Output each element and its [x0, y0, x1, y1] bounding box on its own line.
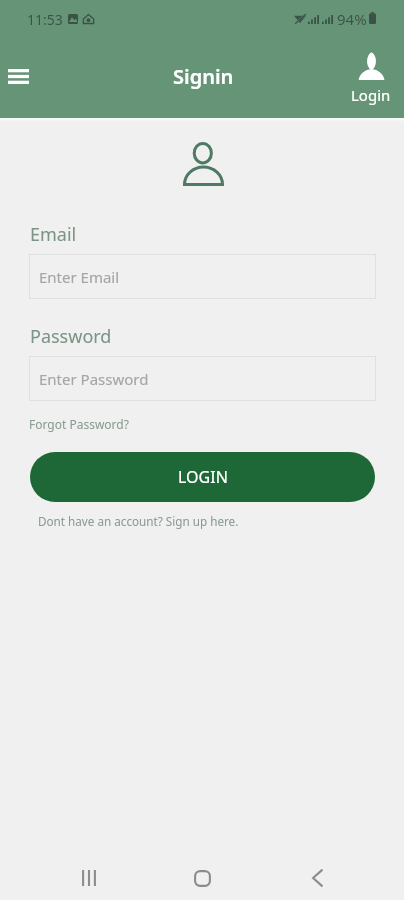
- button[interactable]: Dont have an account? Sign up here.: [38, 513, 239, 529]
- button[interactable]: Recent apps: [65, 854, 113, 900]
- button[interactable]: Open navigation menu: [0, 58, 36, 94]
- button[interactable]: Home: [178, 854, 226, 900]
- staticText: Enter Email: [39, 267, 120, 287]
- button[interactable]: Back: [293, 854, 341, 900]
- staticText: 94%: [337, 9, 367, 29]
- staticText: LOGIN: [178, 466, 228, 488]
- button[interactable]: LOGIN: [30, 452, 375, 502]
- staticText: Password: [30, 324, 112, 349]
- staticText: 11:53: [27, 10, 63, 29]
- staticText: Email: [30, 222, 77, 247]
- button[interactable]: Login: [346, 52, 396, 105]
- staticText: Enter Password: [39, 369, 149, 389]
- staticText: Signin: [173, 63, 234, 90]
- button[interactable]: Email input: [29, 254, 376, 299]
- button[interactable]: Forgot Password?: [29, 416, 129, 432]
- other: User avatar: [182, 141, 224, 187]
- staticText: Login: [351, 85, 391, 105]
- button[interactable]: Password input: [29, 356, 376, 401]
